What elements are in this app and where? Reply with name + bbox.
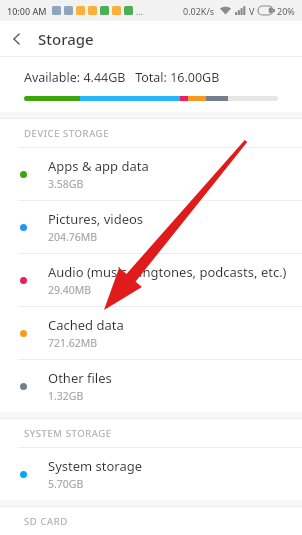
- staticText: Cached data: [48, 316, 124, 334]
- button[interactable]: Cached data: [0, 307, 302, 359]
- staticText: 1.32GB: [48, 389, 84, 403]
- staticText: Pictures, videos: [48, 210, 144, 228]
- staticText: 204.76MB: [48, 230, 98, 244]
- staticText: Apps & app data: [48, 157, 149, 175]
- staticText: Other files: [48, 369, 112, 387]
- staticText: SD CARD: [24, 515, 68, 528]
- staticText: SYSTEM STORAGE: [24, 427, 112, 440]
- staticText: Audio (music, ringtones, podcasts, etc.): [48, 263, 287, 281]
- button[interactable]: Pictures, videos: [0, 201, 302, 253]
- staticText: Available: 4.44GB Total: 16.00GB: [24, 69, 220, 86]
- button[interactable]: System storage: [0, 448, 302, 500]
- staticText: Storage: [38, 29, 94, 49]
- button[interactable]: Back: [0, 22, 34, 56]
- staticText: System storage: [48, 457, 143, 475]
- button[interactable]: Audio (music, ringtones, podcasts, etc.): [0, 254, 302, 306]
- staticText: 20%: [277, 5, 295, 17]
- button[interactable]: Other files: [0, 360, 302, 412]
- staticText: 5.70GB: [48, 477, 84, 491]
- staticText: 3.58GB: [48, 177, 84, 191]
- staticText: 0.02K/s: [183, 5, 215, 17]
- staticText: 10:00 AM: [7, 5, 47, 17]
- staticText: ...: [136, 5, 144, 17]
- button[interactable]: Apps & app data: [0, 148, 302, 200]
- staticText: 29.40MB: [48, 283, 92, 297]
- staticText: V: [249, 5, 255, 17]
- staticText: 721.62MB: [48, 336, 98, 350]
- staticText: DEVICE STORAGE: [24, 127, 110, 140]
